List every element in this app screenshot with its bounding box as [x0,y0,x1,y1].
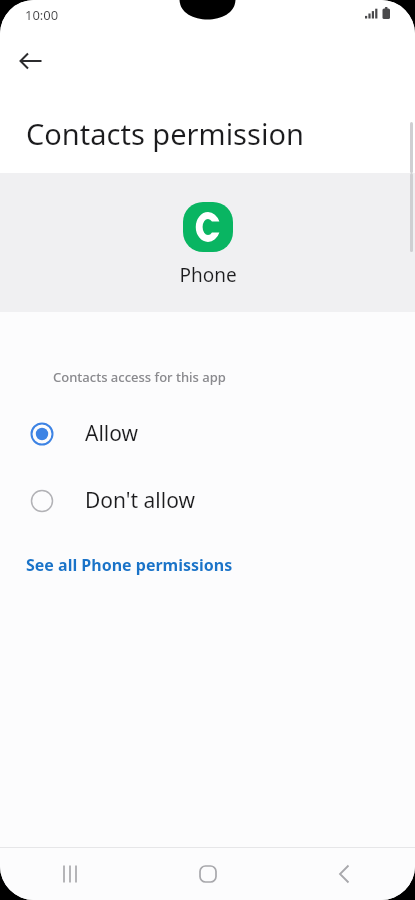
staticText: Don't allow [85,486,195,515]
button[interactable]: Back [277,847,415,900]
staticText: See all Phone permissions [26,554,233,576]
staticText: Allow [85,419,139,448]
button[interactable]: Home [139,847,277,900]
button[interactable]: Don't allow [0,467,415,534]
button[interactable]: Back [9,39,53,83]
button[interactable]: See all Phone permissions [12,546,247,584]
staticText: Contacts access for this app [53,368,226,386]
staticText: Phone [179,262,237,288]
staticText: Contacts permission [26,114,304,153]
button[interactable]: Allow [0,400,415,467]
button[interactable]: Recents [0,847,139,900]
staticText: 10:00 [25,6,59,24]
